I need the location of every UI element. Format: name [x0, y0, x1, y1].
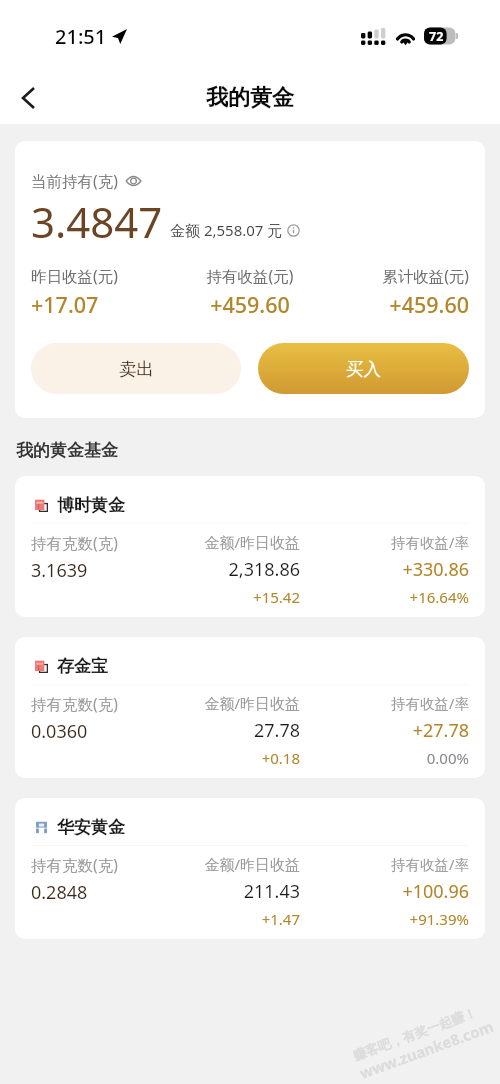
staticText: +1.47: [177, 909, 300, 929]
staticText: +330.86: [300, 557, 469, 582]
staticText: +15.42: [177, 587, 300, 607]
staticText: 3.4847: [31, 193, 163, 250]
staticText: 存金宝: [57, 656, 108, 677]
staticText: 赚客吧，有奖一起赚！: [351, 1004, 478, 1063]
staticText: 累计收益(元): [323, 265, 469, 286]
staticText: 昨日收益(元): [31, 265, 177, 286]
staticText: +16.64%: [300, 587, 469, 607]
staticText: 卖出: [119, 358, 154, 380]
staticText: +0.18: [177, 748, 300, 768]
staticText: 当前持有(克): [31, 170, 118, 191]
staticText: 金额/昨日收益: [177, 854, 300, 874]
staticText: www.zuanke8.com: [357, 1016, 496, 1083]
staticText: 金额/昨日收益: [177, 532, 300, 552]
staticText: 2,318.86: [177, 557, 300, 582]
staticText: 金额/昨日收益: [177, 693, 300, 713]
button[interactable]: Back: [0, 72, 56, 124]
staticText: +459.60: [177, 290, 323, 319]
staticText: +27.78: [300, 718, 469, 743]
staticText: 买入: [346, 358, 381, 380]
staticText: 0.0360: [31, 719, 88, 744]
staticText: 0.2848: [31, 880, 88, 905]
staticText: 27.78: [177, 718, 300, 743]
staticText: 我的黄金基金: [16, 440, 118, 461]
staticText: 持有收益/率: [300, 532, 469, 552]
staticText: 21:51: [55, 23, 107, 50]
staticText: 持有克数(克): [31, 854, 118, 875]
button[interactable]: 华安黄金: [15, 798, 485, 939]
staticText: 持有收益/率: [300, 693, 469, 713]
button[interactable]: 存金宝: [15, 637, 485, 778]
staticText: 0.00%: [300, 748, 469, 768]
staticText: +91.39%: [300, 909, 469, 929]
staticText: 博时黄金: [57, 495, 125, 516]
button[interactable]: 卖出: [31, 343, 241, 394]
staticText: 持有克数(克): [31, 532, 118, 553]
staticText: 金额 2,558.07 元: [170, 220, 283, 240]
staticText: 我的黄金: [206, 84, 294, 112]
staticText: 持有克数(克): [31, 693, 118, 714]
staticText: 211.43: [177, 879, 300, 904]
staticText: 持有收益(元): [177, 265, 323, 286]
staticText: 华安黄金: [57, 817, 125, 838]
staticText: 72: [429, 28, 444, 45]
button[interactable]: 买入: [258, 343, 469, 394]
staticText: 3.1639: [31, 558, 88, 583]
staticText: 持有收益/率: [300, 854, 469, 874]
staticText: +459.60: [323, 290, 469, 319]
button[interactable]: 博时黄金: [15, 476, 485, 617]
staticText: +100.96: [300, 879, 469, 904]
staticText: +17.07: [31, 290, 177, 319]
